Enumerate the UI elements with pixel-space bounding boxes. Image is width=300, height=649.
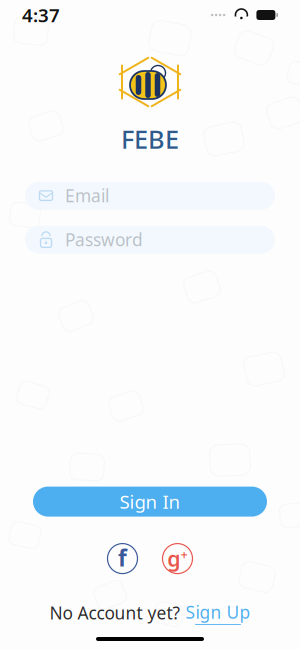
staticText: Sign In <box>119 489 180 514</box>
staticText: f <box>118 542 127 573</box>
button[interactable]: Sign Up <box>185 601 250 625</box>
staticText: + <box>181 547 188 562</box>
button[interactable]: Sign in with Google Plus <box>161 543 193 575</box>
staticText: g <box>167 544 180 573</box>
staticText: Email <box>65 184 109 207</box>
staticText: Sign Up <box>185 601 250 624</box>
button[interactable]: Sign in with Facebook <box>106 543 138 575</box>
staticText: 4:37 <box>22 3 60 27</box>
staticText: No Account yet? <box>49 601 180 624</box>
staticText: FEBE <box>121 122 179 156</box>
button[interactable]: Password <box>25 226 275 254</box>
staticText: Password <box>65 228 143 251</box>
button[interactable]: Email <box>25 182 275 210</box>
button[interactable]: Sign In <box>33 487 267 517</box>
